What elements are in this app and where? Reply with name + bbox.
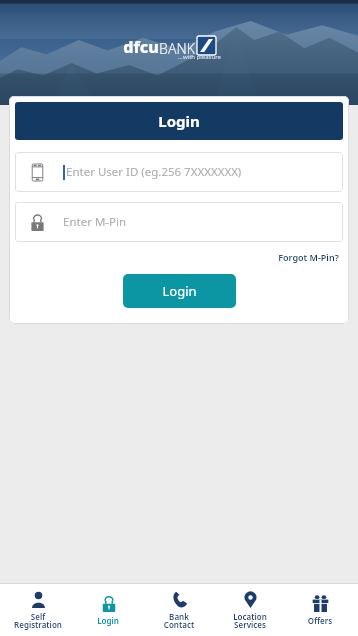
button[interactable]: Self Registration — [5, 587, 71, 633]
staticText: dfcu — [123, 36, 159, 58]
staticText: Offers — [287, 615, 353, 626]
staticText: Bank Contact — [146, 611, 212, 630]
staticText: Self Registration — [5, 611, 71, 630]
button[interactable]: Location Services — [217, 587, 283, 633]
staticText: Enter User ID (eg.256 7XXXXXXX) — [66, 164, 242, 180]
button[interactable]: Offers — [287, 591, 353, 629]
staticText: Location Services — [217, 611, 283, 630]
staticText: Forgot M-Pin? — [278, 251, 339, 263]
button[interactable]: Forgot M-Pin? — [274, 249, 343, 265]
staticText: Login — [158, 111, 200, 131]
button[interactable]: Login — [75, 591, 141, 629]
button[interactable]: Login — [123, 274, 236, 308]
staticText: Login — [162, 282, 197, 300]
button[interactable]: Enter M-Pin — [15, 202, 343, 242]
staticText: Login — [75, 615, 141, 626]
staticText: Enter M-Pin — [63, 214, 127, 230]
staticText: ...with pleasure — [178, 53, 221, 61]
button[interactable]: Enter User ID (eg.256 7XXXXXXX) — [15, 152, 343, 192]
staticText: BANK — [159, 39, 195, 58]
button[interactable]: Bank Contact — [146, 587, 212, 633]
